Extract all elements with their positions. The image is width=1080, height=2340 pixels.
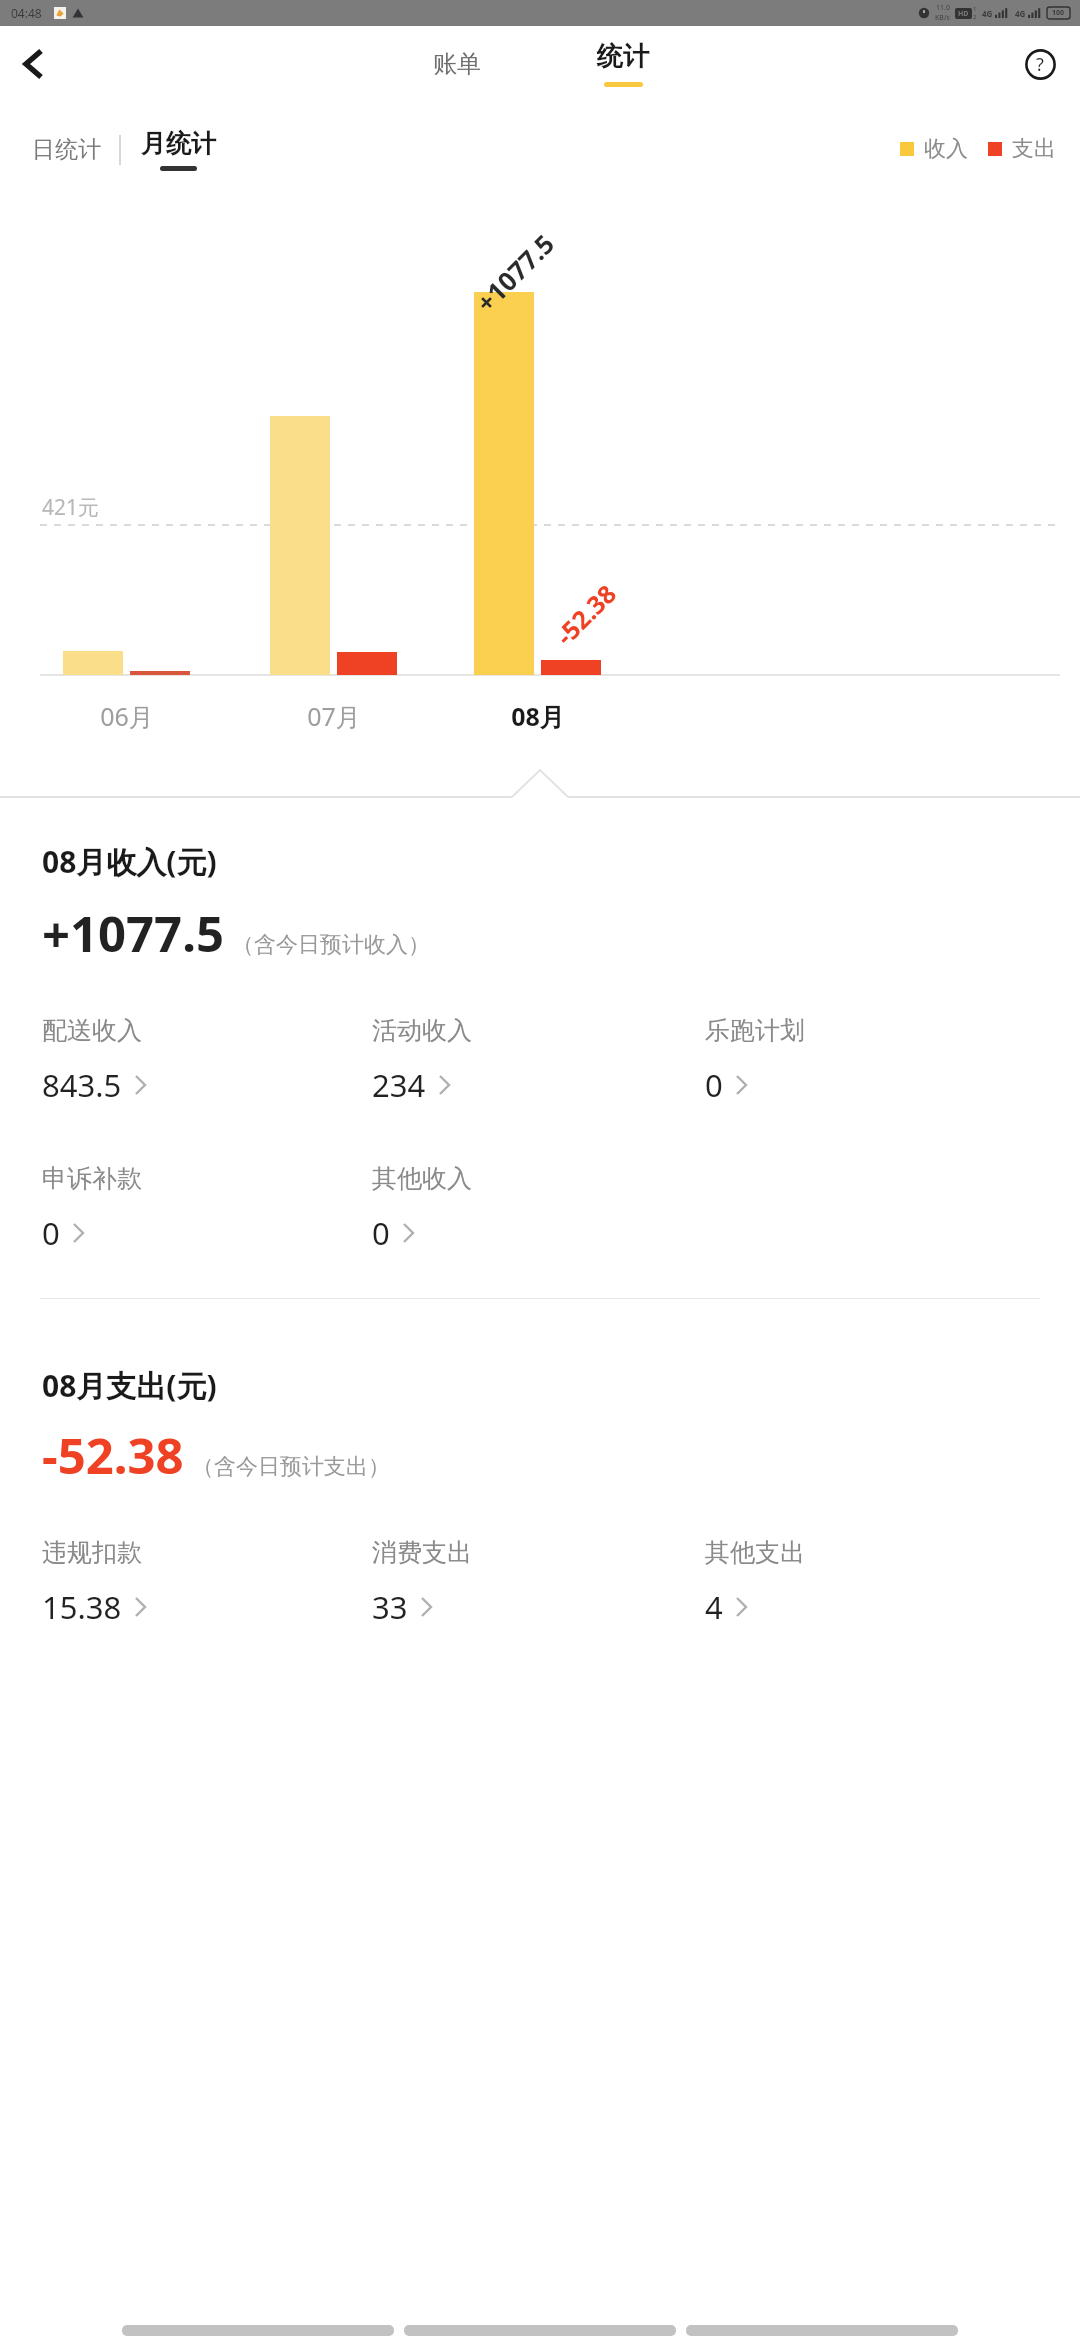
staticText: KB/s xyxy=(935,13,950,23)
button[interactable]: 乐跑计划 xyxy=(705,1015,995,1106)
staticText: 07月 xyxy=(307,699,361,733)
staticText: 收入 xyxy=(924,135,968,163)
staticText: 4G xyxy=(982,8,993,19)
staticText: -52.38 xyxy=(548,576,623,652)
staticText: （含今日预计收入） xyxy=(232,931,430,959)
staticText: -52.38 xyxy=(42,1422,184,1489)
staticText: 08月收入(元) xyxy=(42,841,217,882)
staticText: 乐跑计划 xyxy=(705,1015,805,1046)
button[interactable]: 账单 xyxy=(387,26,527,101)
button[interactable]: 月统计 xyxy=(141,128,216,171)
staticText: 06月 xyxy=(100,699,154,733)
staticText: 日统计 xyxy=(32,135,101,164)
staticText: 申诉补款 xyxy=(42,1163,142,1194)
staticText: 234 xyxy=(372,1064,426,1106)
staticText: 其他收入 xyxy=(372,1163,472,1194)
staticText: 4 xyxy=(705,1586,723,1628)
button[interactable]: 08月 xyxy=(478,699,598,733)
staticText: 04:48 xyxy=(11,5,42,21)
button[interactable]: 违规扣款 xyxy=(42,1537,332,1628)
staticText: 11.0 xyxy=(936,3,950,13)
staticText: 违规扣款 xyxy=(42,1537,142,1568)
staticText: 0 xyxy=(42,1212,60,1254)
staticText: 08月支出(元) xyxy=(42,1365,217,1406)
staticText: 15.38 xyxy=(42,1586,122,1628)
staticText: 33 xyxy=(372,1586,408,1628)
button[interactable]: 活动收入 xyxy=(372,1015,662,1106)
button[interactable]: 消费支出 xyxy=(372,1537,662,1628)
button[interactable]: Help xyxy=(1014,38,1066,90)
staticText: （含今日预计支出） xyxy=(192,1453,390,1481)
staticText: 843.5 xyxy=(42,1064,122,1106)
staticText: 0 xyxy=(372,1212,390,1254)
staticText: 月统计 xyxy=(141,128,216,159)
staticText: +1077.5 xyxy=(468,226,561,319)
staticText: 0 xyxy=(705,1064,723,1106)
staticText: 2 xyxy=(973,13,977,21)
staticText: 支出 xyxy=(1012,135,1056,163)
staticText: +1077.5 xyxy=(42,900,224,967)
button[interactable]: 日统计 xyxy=(32,135,101,164)
button[interactable]: System navigation xyxy=(404,2325,676,2336)
button[interactable]: 06月 xyxy=(67,699,187,733)
button[interactable]: 07月 xyxy=(274,699,394,733)
button[interactable]: System navigation xyxy=(686,2325,958,2336)
button[interactable]: 申诉补款 xyxy=(42,1163,332,1254)
staticText: 08月 xyxy=(511,699,565,733)
staticText: 统计 xyxy=(597,40,649,73)
staticText: 其他支出 xyxy=(705,1537,805,1568)
button[interactable]: 统计 xyxy=(553,26,693,101)
staticText: 1 xyxy=(973,5,977,13)
staticText: 账单 xyxy=(433,49,481,79)
staticText: 活动收入 xyxy=(372,1015,472,1046)
button[interactable]: System navigation xyxy=(122,2325,394,2336)
staticText: 4G xyxy=(1015,8,1026,19)
staticText: 421元 xyxy=(42,493,100,522)
staticText: 100 xyxy=(1052,8,1065,18)
staticText: ? xyxy=(1036,52,1044,77)
button[interactable]: 配送收入 xyxy=(42,1015,332,1106)
staticText: 消费支出 xyxy=(372,1537,472,1568)
staticText: 配送收入 xyxy=(42,1015,142,1046)
button[interactable]: 其他收入 xyxy=(372,1163,662,1254)
button[interactable]: Back xyxy=(6,37,60,91)
button[interactable]: 其他支出 xyxy=(705,1537,995,1628)
staticText: HD xyxy=(958,9,969,19)
